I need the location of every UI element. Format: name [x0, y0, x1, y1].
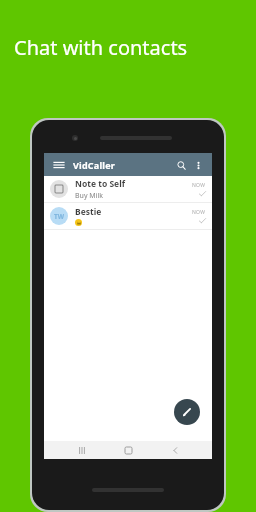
button[interactable]: Open navigation drawer: [51, 157, 67, 173]
staticText: Note to Self: [75, 178, 125, 190]
staticText: VidCaller: [73, 159, 115, 171]
button[interactable]: More options: [191, 158, 205, 172]
staticText: NOW: [192, 209, 206, 216]
staticText: NOW: [192, 182, 206, 189]
button[interactable]: Back: [166, 441, 184, 459]
button[interactable]: Home: [119, 441, 137, 459]
staticText: Chat with contacts: [14, 34, 188, 61]
staticText: Buy Milk: [75, 191, 103, 201]
button[interactable]: TW: [44, 203, 212, 229]
button[interactable]: Search: [173, 157, 189, 173]
button[interactable]: Note to Self: [44, 176, 212, 202]
staticText: TW: [54, 212, 65, 221]
button[interactable]: Recent apps: [73, 441, 91, 459]
staticText: Bestie: [75, 206, 102, 218]
button[interactable]: Compose new message: [174, 399, 200, 425]
